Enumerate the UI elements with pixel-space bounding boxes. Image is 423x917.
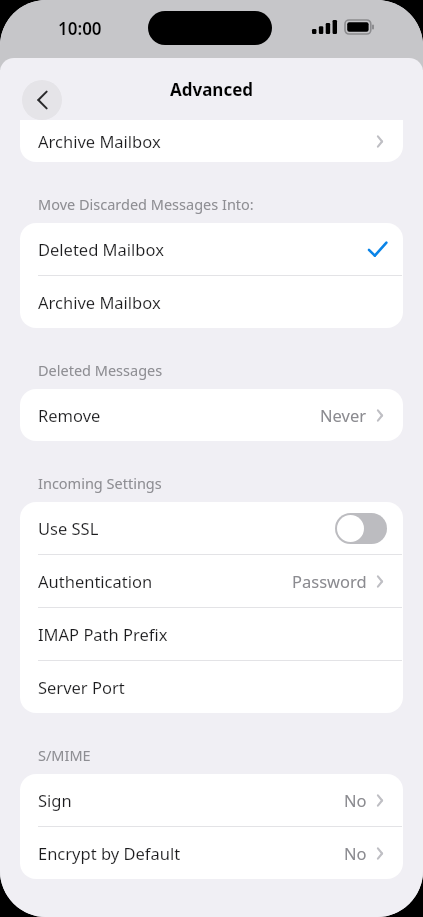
button[interactable]: Sign <box>20 774 403 826</box>
staticText: No <box>344 789 367 811</box>
staticText: Encrypt by Default <box>38 842 181 864</box>
staticText: Authentication <box>38 570 153 592</box>
button[interactable]: Server Port <box>20 661 403 713</box>
staticText: Use SSL <box>38 517 99 539</box>
staticText: Advanced <box>0 78 423 101</box>
button[interactable]: Back <box>22 80 62 120</box>
button[interactable]: Authentication <box>20 555 403 607</box>
button[interactable]: Use SSL <box>20 502 403 554</box>
staticText: IMAP Path Prefix <box>38 623 168 645</box>
staticText: 10:00 <box>58 17 102 40</box>
button[interactable]: Deleted Mailbox <box>20 223 403 275</box>
staticText: Password <box>292 570 367 592</box>
staticText: Never <box>320 404 367 426</box>
staticText: Sign <box>38 789 72 811</box>
button[interactable]: IMAP Path Prefix <box>20 608 403 660</box>
button[interactable]: Archive Mailbox <box>20 276 403 328</box>
staticText: S/MIME <box>38 745 423 765</box>
staticText: No <box>344 842 367 864</box>
button[interactable]: Remove <box>20 389 403 441</box>
staticText: Archive Mailbox <box>38 291 161 313</box>
staticText: Incoming Settings <box>38 473 423 493</box>
button[interactable]: Encrypt by Default <box>20 827 403 879</box>
staticText: Remove <box>38 404 101 426</box>
staticText: Server Port <box>38 676 125 698</box>
button[interactable]: Archive Mailbox <box>20 120 403 162</box>
staticText: Move Discarded Messages Into: <box>38 194 423 214</box>
staticText: Deleted Mailbox <box>38 238 164 260</box>
button[interactable]: Use SSL toggle <box>335 513 387 544</box>
staticText: Deleted Messages <box>38 360 423 380</box>
staticText: Archive Mailbox <box>38 130 161 152</box>
